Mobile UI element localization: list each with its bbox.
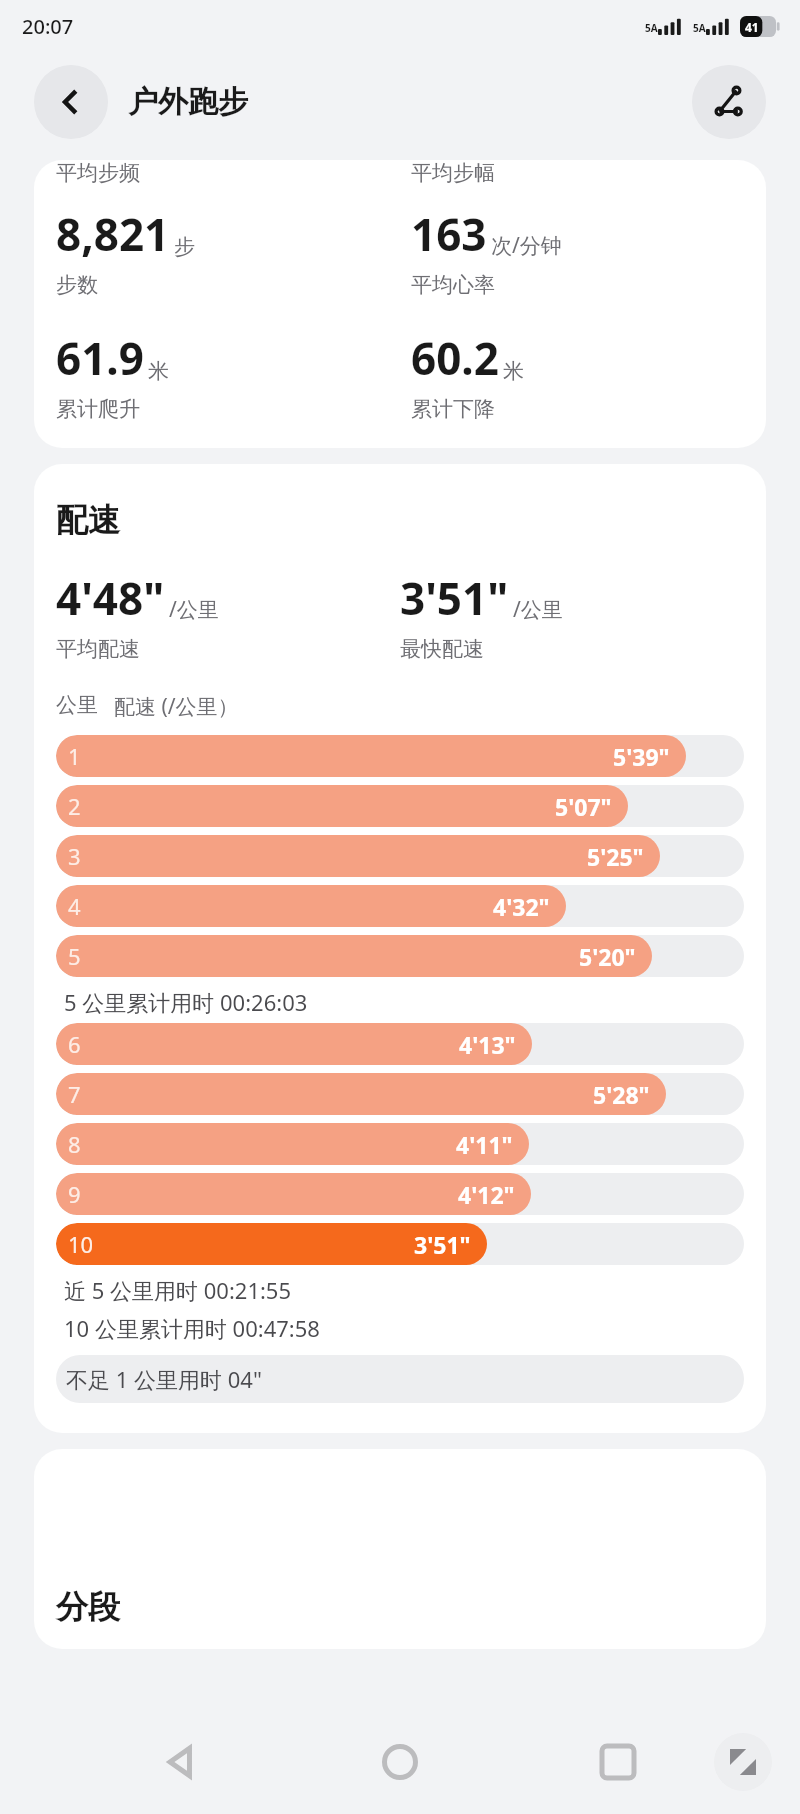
staticText: 累计爬升 [56, 396, 140, 422]
staticText: 4'11" [456, 1129, 513, 1160]
staticText: 7 [68, 1079, 81, 1109]
button[interactable]: 2 [56, 785, 744, 827]
button[interactable]: 4 [56, 885, 744, 927]
staticText: 163 [411, 204, 487, 264]
staticText: 累计下降 [411, 396, 495, 422]
staticText: 近 5 公里用时 00:21:55 [64, 1275, 292, 1305]
staticText: 5 [68, 941, 81, 971]
staticText: 5'20" [579, 941, 636, 972]
staticText: 5'25" [587, 841, 644, 872]
staticText: 不足 1 公里用时 04" [66, 1364, 262, 1394]
staticText: 平均心率 [411, 272, 495, 298]
button[interactable]: 5 [56, 935, 744, 977]
staticText: 5'39" [613, 741, 670, 772]
staticText: 4'12" [458, 1179, 515, 1210]
staticText: 配速 (/公里） [114, 692, 239, 721]
staticText: 户外跑步 [128, 83, 248, 121]
staticText: 1 [68, 741, 81, 771]
staticText: 步数 [56, 272, 98, 298]
staticText: 分段 [56, 1587, 120, 1627]
button[interactable]: Share [692, 65, 766, 139]
staticText: 平均配速 [56, 636, 140, 662]
button[interactable]: 10 [56, 1223, 744, 1265]
staticText: 3 [68, 841, 81, 871]
staticText: 5 公里累计用时 00:26:03 [64, 987, 308, 1017]
staticText: /公里 [513, 595, 563, 624]
staticText: 公里 [56, 692, 98, 718]
staticText: 次/分钟 [491, 231, 562, 260]
button[interactable]: Back [146, 1726, 218, 1798]
staticText: 2 [68, 791, 81, 821]
staticText: 平均步幅 [411, 160, 495, 186]
button[interactable]: Back [34, 65, 108, 139]
button[interactable]: Home [364, 1726, 436, 1798]
staticText: 4'13" [459, 1029, 516, 1060]
staticText: 41 [745, 19, 759, 35]
button[interactable]: 3 [56, 835, 744, 877]
staticText: 5'28" [593, 1079, 650, 1110]
staticText: 10 公里累计用时 00:47:58 [64, 1313, 320, 1343]
staticText: 步 [174, 234, 195, 260]
staticText: 米 [148, 358, 169, 384]
button[interactable]: 9 [56, 1173, 744, 1215]
staticText: 米 [503, 358, 524, 384]
button[interactable]: Recents [582, 1726, 654, 1798]
staticText: 4'32" [493, 891, 550, 922]
button[interactable]: 7 [56, 1073, 744, 1115]
staticText: 9 [68, 1179, 81, 1209]
staticText: 平均步频 [56, 160, 140, 186]
staticText: /公里 [169, 595, 219, 624]
button[interactable]: 8 [56, 1123, 744, 1165]
staticText: 6 [68, 1029, 81, 1059]
button[interactable]: Screenshot tool [714, 1733, 772, 1791]
staticText: 61.9 [56, 328, 144, 388]
staticText: 3'51" [414, 1229, 471, 1260]
staticText: 5A [645, 21, 658, 35]
staticText: 8 [68, 1129, 81, 1159]
staticText: 3'51" [400, 568, 509, 628]
staticText: 配速 [56, 500, 120, 540]
staticText: 5A [693, 21, 706, 35]
button[interactable]: 6 [56, 1023, 744, 1065]
staticText: 最快配速 [400, 636, 484, 662]
staticText: 4'48" [56, 568, 165, 628]
staticText: 10 [68, 1229, 94, 1259]
button[interactable]: 1 [56, 735, 744, 777]
staticText: 5'07" [555, 791, 612, 822]
staticText: 60.2 [411, 328, 499, 388]
staticText: 4 [68, 891, 81, 921]
staticText: 20:07 [22, 13, 74, 40]
staticText: 8,821 [56, 204, 170, 264]
